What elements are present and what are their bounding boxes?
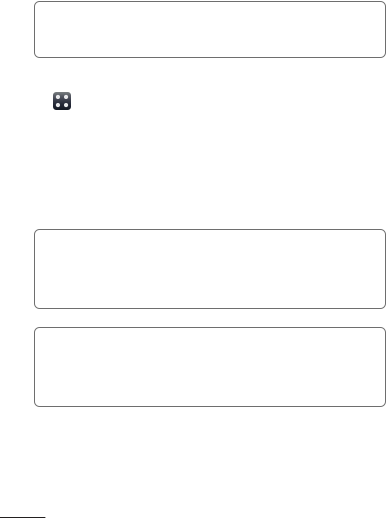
button[interactable]: Apps <box>53 92 71 110</box>
button[interactable] <box>34 1 385 57</box>
button[interactable] <box>34 229 385 308</box>
button[interactable] <box>34 327 385 406</box>
